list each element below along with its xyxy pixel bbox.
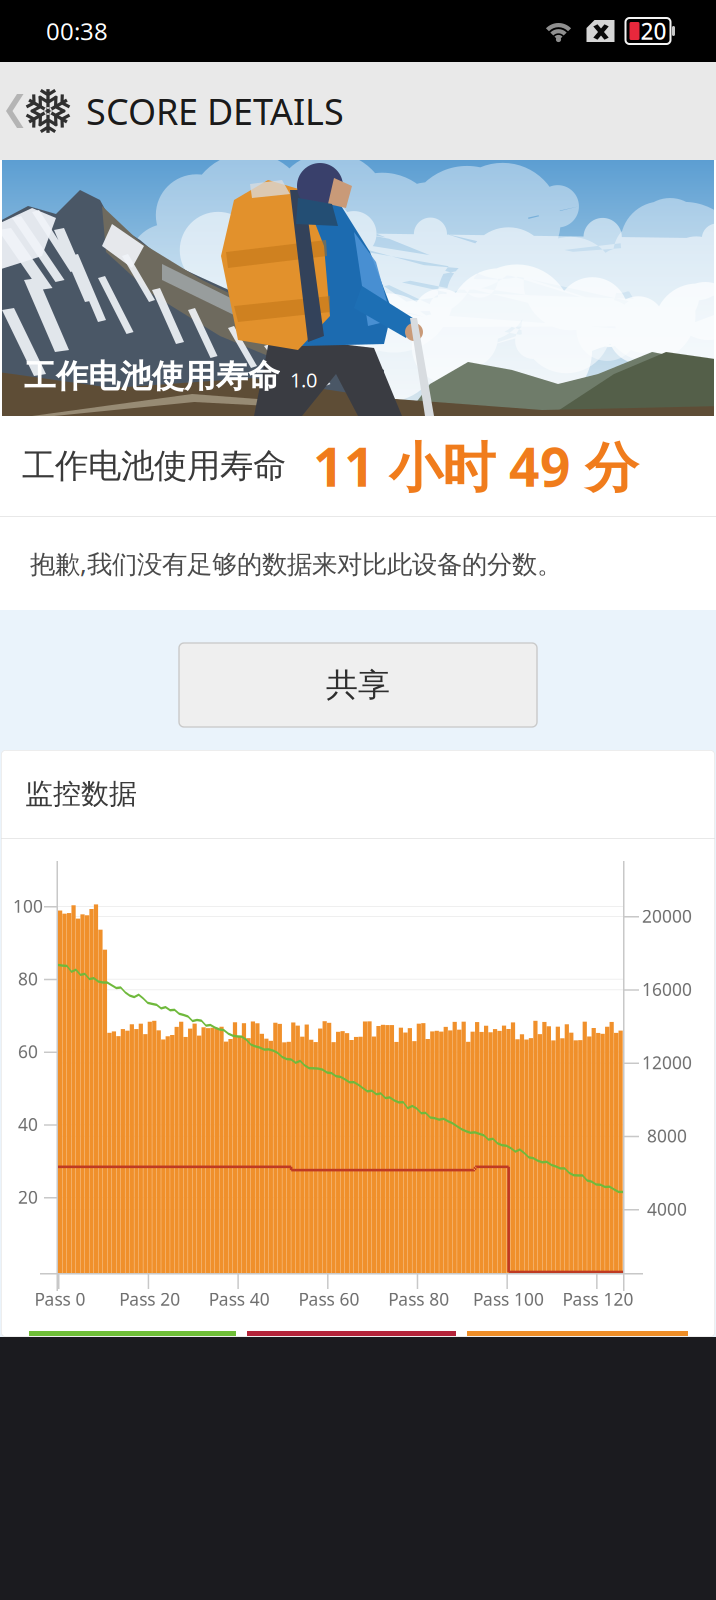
button[interactable]: 共享 [179,643,537,727]
staticText: Pass 60 [298,1287,359,1310]
staticText: 11 小时 49 分 [313,431,638,501]
staticText: 4000 [647,1197,687,1220]
staticText: 40 [18,1113,38,1136]
staticText: 工作电池使用寿命 [24,357,280,396]
staticText: 20 [18,1185,38,1208]
staticText: 工作电池使用寿命 [22,445,286,486]
staticText: 8000 [647,1124,687,1147]
staticText: 60 [18,1040,38,1063]
staticText: Pass 0 [34,1287,85,1310]
staticText: 1.0 [290,366,317,393]
staticText: 抱歉,我们没有足够的数据来对比此设备的分数。 [30,547,562,580]
staticText: 共享 [326,665,390,705]
staticText: Pass 120 [563,1287,634,1310]
staticText: 20000 [642,904,692,927]
staticText: 20 [640,16,666,46]
staticText: 16000 [642,978,692,1001]
staticText: 100 [13,894,43,917]
staticText: SCORE DETAILS [86,87,344,135]
staticText: Pass 40 [209,1287,270,1310]
staticText: 12000 [642,1051,692,1074]
staticText: Pass 100 [473,1287,544,1310]
staticText: Pass 20 [119,1287,180,1310]
staticText: 监控数据 [25,777,137,811]
staticText: 80 [18,967,38,990]
staticText: 00:38 [46,15,108,47]
button[interactable]: SCORE DETAILS [0,62,716,160]
staticText: Pass 80 [388,1287,449,1310]
